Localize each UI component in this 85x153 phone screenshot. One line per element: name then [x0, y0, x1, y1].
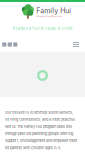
button[interactable]: Vimeo	[13, 42, 17, 47]
button[interactable]: Family Hui home	[18, 2, 67, 18]
staticText: It takes a hui to raise a child	[12, 25, 72, 31]
staticText: a Program of Lead4Tomorrow	[36, 15, 61, 17]
button[interactable]: Twitter	[2, 42, 6, 47]
button[interactable]: Menu	[71, 41, 80, 48]
staticText: Family Hui	[36, 7, 71, 15]
staticText: Our mission is to develop sound families…	[5, 110, 77, 150]
button[interactable]: Facebook	[8, 42, 12, 47]
